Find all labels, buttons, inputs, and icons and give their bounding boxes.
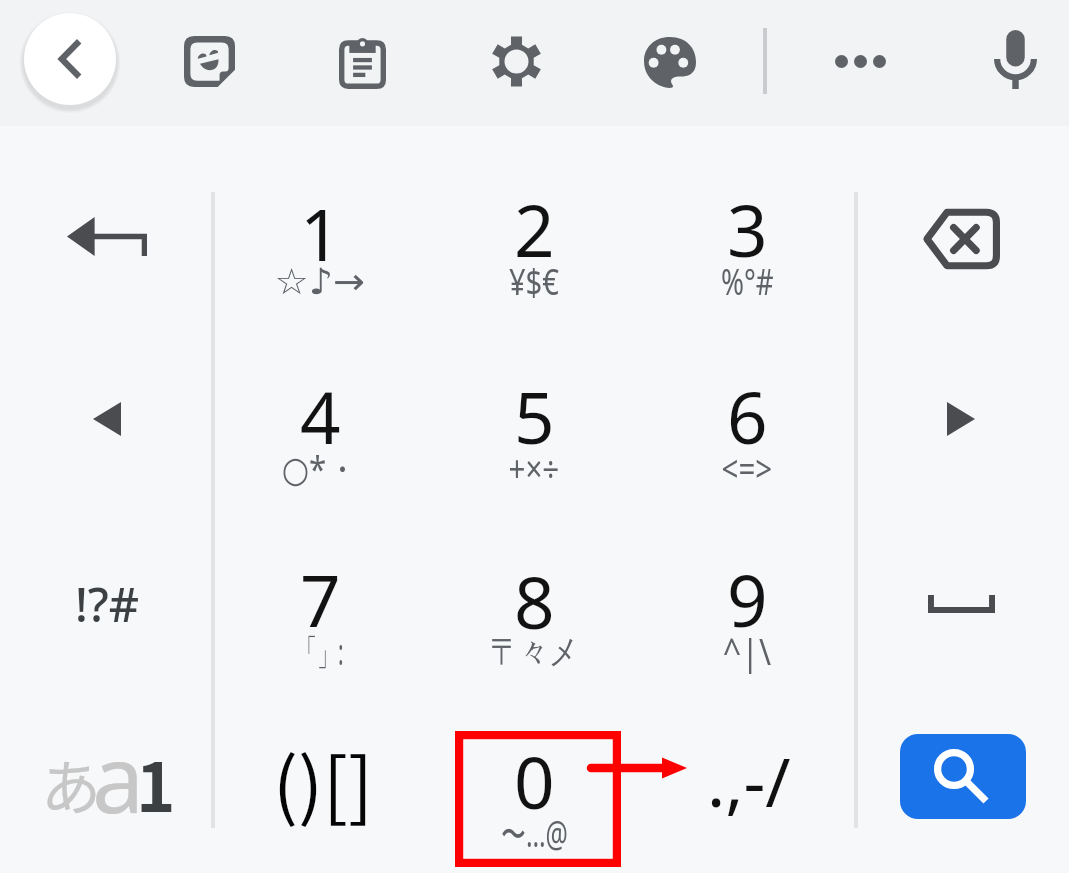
staticText: 9 <box>727 551 768 648</box>
staticText: ()[] <box>273 727 374 834</box>
staticText: 3 <box>727 181 768 278</box>
staticText: 7 <box>300 551 341 648</box>
staticText: !?# <box>75 572 140 636</box>
staticText: 5 <box>514 368 555 465</box>
button[interactable]: 5 <box>427 350 641 532</box>
staticText: 〜…@ <box>501 809 568 858</box>
staticText: 1 <box>136 734 176 831</box>
staticText: 「」: <box>296 627 344 676</box>
button[interactable]: あ <box>14 705 228 855</box>
staticText: <=> <box>722 444 772 493</box>
staticText: 1 <box>300 185 341 282</box>
button[interactable]: Settings <box>461 7 571 117</box>
button[interactable]: Space <box>886 529 1036 679</box>
button[interactable]: Voice input <box>960 4 1069 114</box>
button[interactable]: More options <box>805 6 915 116</box>
staticText: .,-/ <box>707 734 791 827</box>
staticText: a <box>92 714 145 841</box>
button[interactable]: 0 <box>427 715 641 873</box>
button[interactable]: 6 <box>640 350 854 532</box>
staticText: 2 <box>514 181 555 278</box>
button[interactable]: 7 <box>213 533 427 715</box>
button[interactable]: ()[] <box>216 705 430 855</box>
staticText: ☆♪→ <box>274 261 366 303</box>
button[interactable]: 4 <box>213 350 427 532</box>
staticText: %°# <box>721 257 774 306</box>
staticText: 4 <box>300 368 341 465</box>
button[interactable]: 8 <box>427 533 641 715</box>
staticText: 0 <box>514 733 555 830</box>
button[interactable]: Move cursor left <box>32 344 182 494</box>
button[interactable]: Back <box>24 13 116 105</box>
button[interactable]: 2 <box>427 163 641 345</box>
staticText: 〒々メ <box>490 629 579 674</box>
staticText: 8 <box>514 553 555 650</box>
button[interactable]: Undo <box>32 161 182 311</box>
button[interactable]: Stickers <box>154 6 264 116</box>
button[interactable]: Theme <box>615 7 725 117</box>
button[interactable]: !?# <box>0 529 214 679</box>
staticText: ^|\ <box>723 627 771 676</box>
button[interactable]: 9 <box>640 533 854 715</box>
button[interactable]: 1 <box>213 163 427 345</box>
button[interactable]: 3 <box>640 163 854 345</box>
staticText: あ <box>41 740 101 827</box>
button[interactable]: Clipboard <box>307 5 417 115</box>
button[interactable]: Move cursor right <box>886 344 1036 494</box>
staticText: 6 <box>727 368 768 465</box>
staticText: ¥$€ <box>509 257 559 306</box>
button[interactable]: .,-/ <box>642 705 856 855</box>
button[interactable]: Search <box>900 734 1026 819</box>
staticText: ○*・ <box>282 444 358 493</box>
button[interactable]: Backspace <box>886 164 1036 314</box>
staticText: +×÷ <box>509 444 559 493</box>
